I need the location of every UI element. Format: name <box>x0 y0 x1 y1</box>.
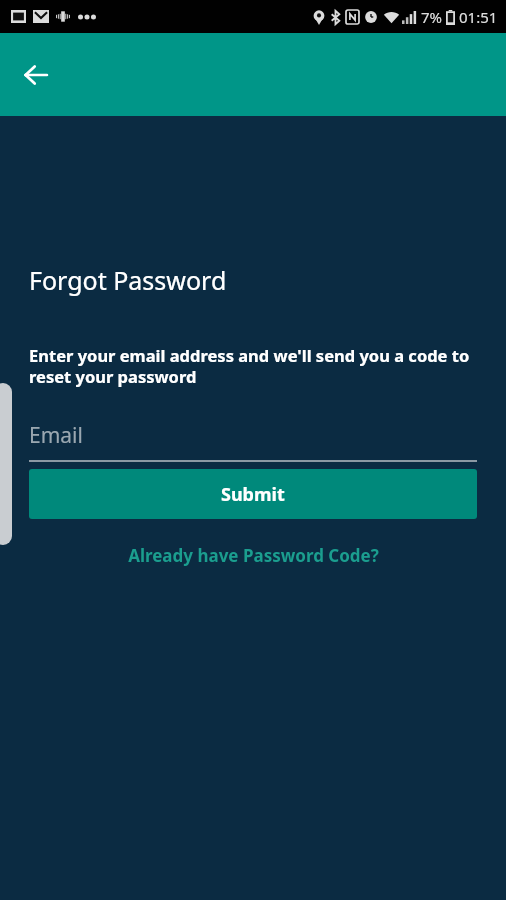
button[interactable]: Email <box>29 421 477 462</box>
staticText: Forgot Password <box>29 263 227 297</box>
staticText: Enter your email address and we'll send … <box>29 344 477 388</box>
staticText: 01:51 <box>459 7 498 27</box>
staticText: 7% <box>421 7 443 27</box>
staticText: Submit <box>221 482 285 507</box>
button[interactable]: Submit <box>29 469 477 519</box>
staticText: Already have Password Code? <box>128 544 379 567</box>
button[interactable]: Already have Password Code? <box>29 539 477 571</box>
staticText: Email <box>29 421 83 450</box>
button[interactable]: Back <box>13 52 59 98</box>
